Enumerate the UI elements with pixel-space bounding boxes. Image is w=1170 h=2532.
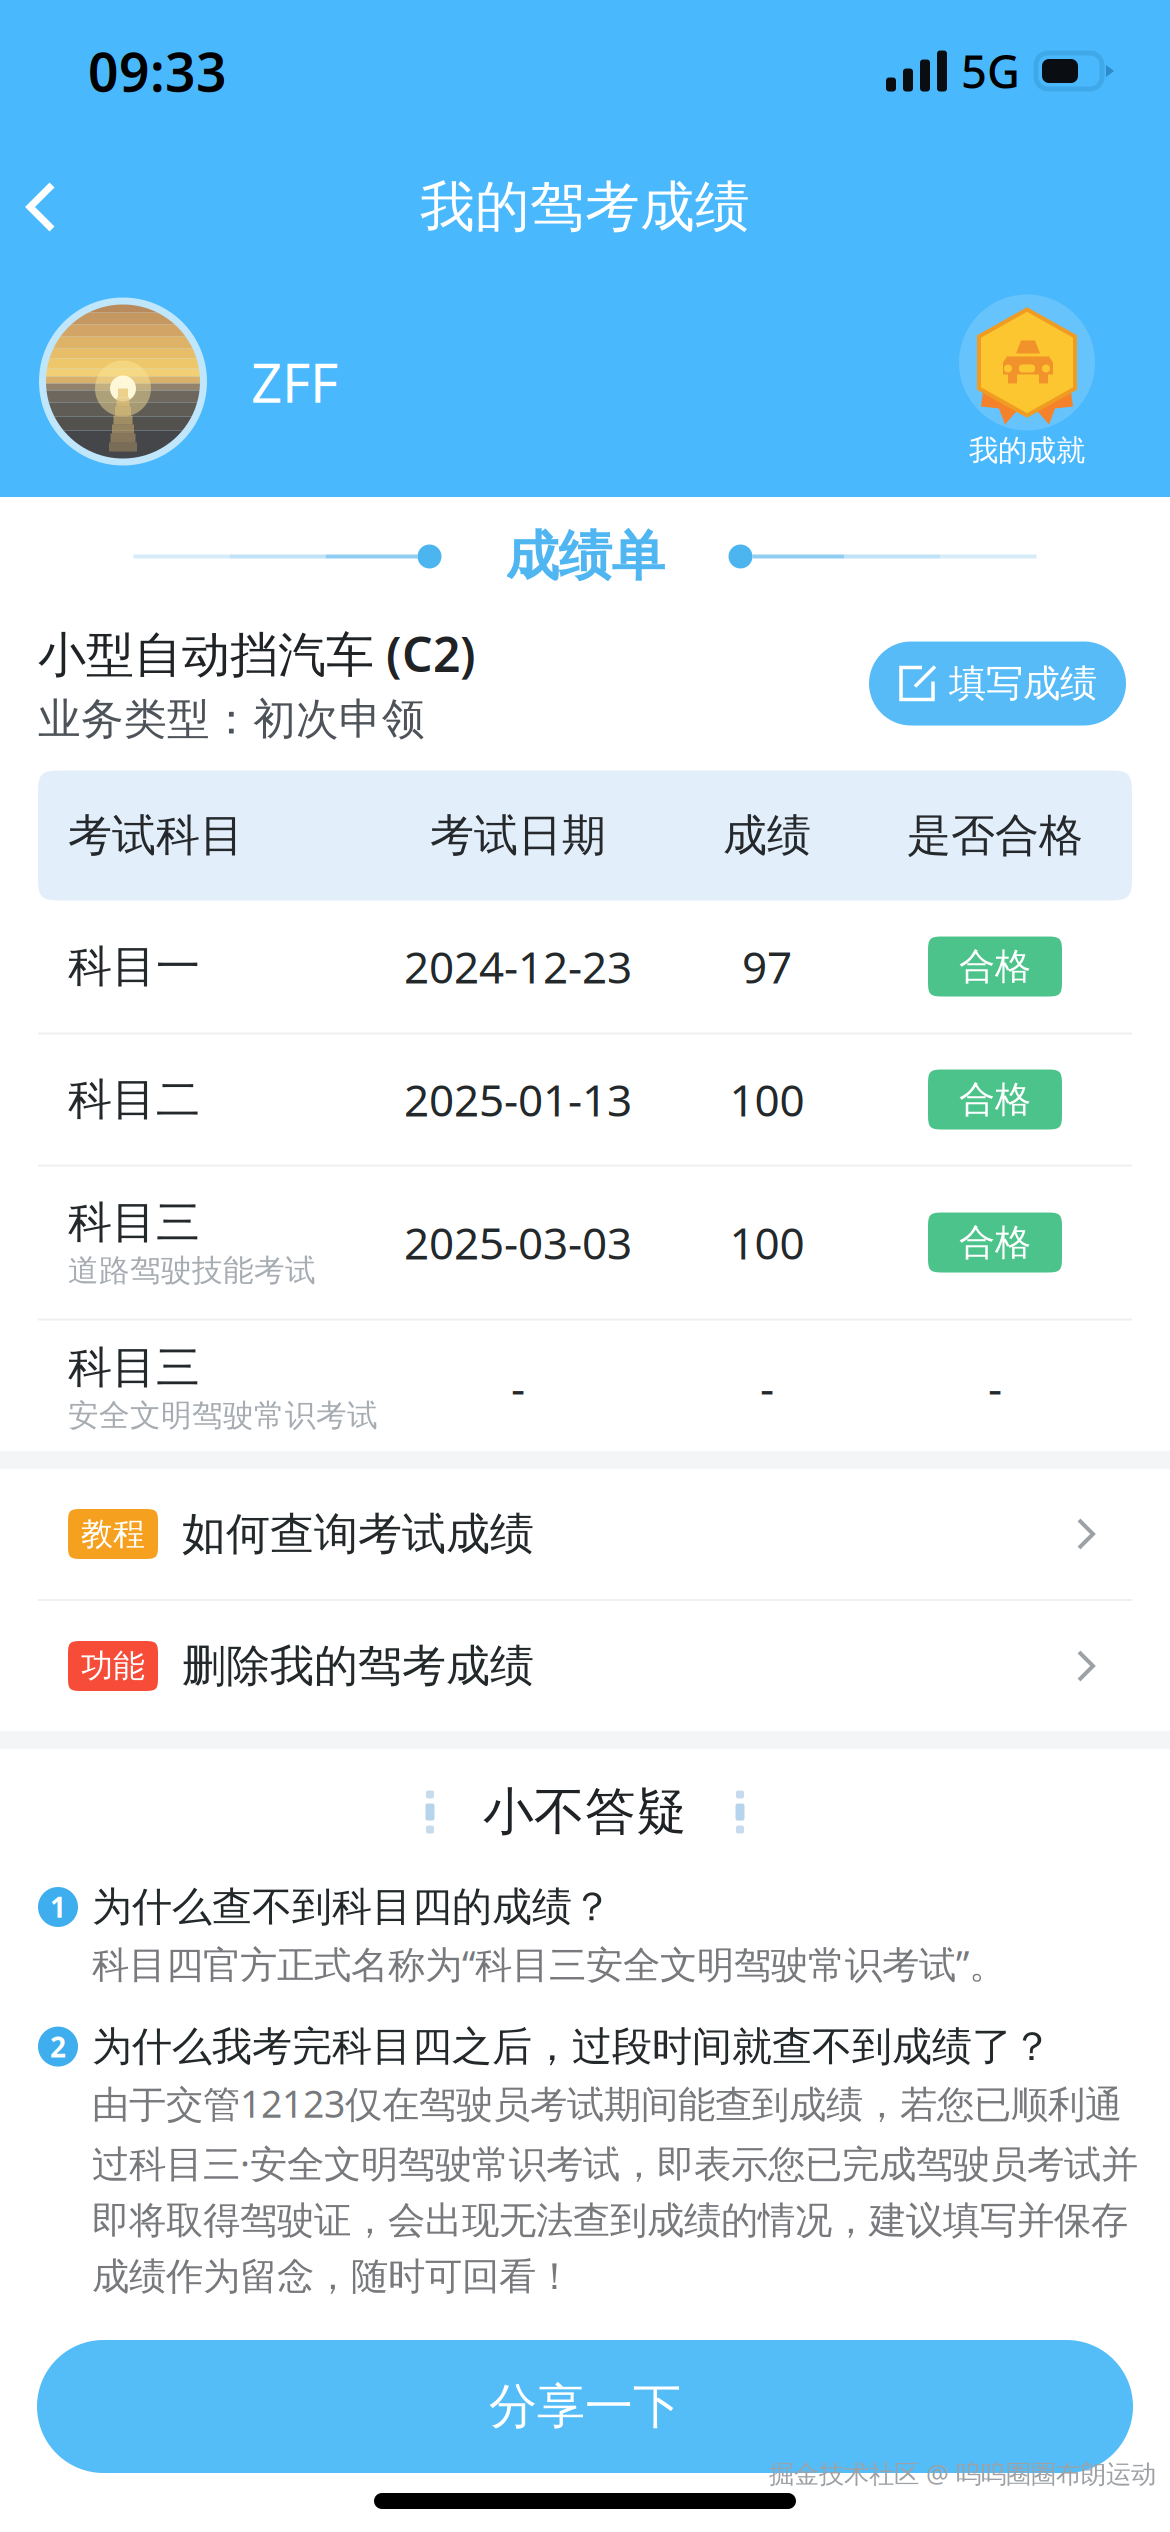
button[interactable]: 分享一下: [37, 2340, 1133, 2473]
staticText: -: [511, 1358, 525, 1417]
staticText: 科目三: [68, 1196, 200, 1250]
staticText: 成绩单: [505, 524, 664, 589]
button[interactable]: 填写成绩: [869, 641, 1126, 725]
staticText: 是否合格: [907, 808, 1083, 862]
staticText: 为什么查不到科目四的成绩？: [92, 1882, 612, 1931]
staticText: 删除我的驾考成绩: [182, 1639, 534, 1693]
staticText: ZFF: [251, 345, 338, 418]
staticText: 2025-01-13: [404, 1070, 632, 1129]
staticText: 如何查询考试成绩: [182, 1507, 534, 1561]
staticText: 教程: [81, 1514, 145, 1554]
staticText: 我的成就: [969, 432, 1085, 468]
staticText: 成绩: [723, 808, 811, 862]
staticText: -: [988, 1358, 1002, 1417]
staticText: 09:33: [88, 36, 227, 106]
staticText: 科目三: [68, 1341, 200, 1395]
staticText: 科目一: [68, 939, 200, 993]
staticText: 由于交管12123仅在驾驶员考试期间能查到成绩，若您已顺利通过科目三·安全文明驾…: [92, 2079, 1138, 2299]
button[interactable]: 教程: [0, 1469, 1170, 1599]
staticText: 100: [729, 1213, 804, 1272]
staticText: 5G: [961, 41, 1020, 101]
staticText: 功能: [81, 1646, 145, 1686]
staticText: 2025-03-03: [404, 1213, 632, 1272]
button[interactable]: 功能: [0, 1601, 1170, 1731]
staticText: 100: [729, 1070, 804, 1129]
staticText: 科目四官方正式名称为“科目三安全文明驾驶常识考试”。: [92, 1939, 1006, 1989]
staticText: 合格: [959, 1220, 1031, 1265]
staticText: 业务类型：初次申领: [38, 693, 425, 746]
staticText: 2: [50, 2028, 66, 2065]
staticText: 合格: [959, 944, 1031, 989]
staticText: 我的驾考成绩: [420, 173, 750, 240]
staticText: 道路驾驶技能考试: [68, 1252, 316, 1289]
staticText: 为什么我考完科目四之后，过段时间就查不到成绩了？: [92, 2022, 1052, 2071]
staticText: 科目二: [68, 1072, 200, 1126]
staticText: 2024-12-23: [404, 937, 632, 996]
staticText: 1: [50, 1888, 66, 1926]
staticText: -: [760, 1358, 774, 1417]
staticText: 分享一下: [489, 2377, 681, 2436]
staticText: 97: [742, 937, 792, 996]
staticText: 安全文明驾驶常识考试: [68, 1397, 378, 1434]
staticText: 小型自动挡汽车 (C2): [38, 621, 476, 685]
staticText: 合格: [959, 1077, 1031, 1122]
staticText: 掘金技术社区 @ 呜呜圈圈布朗运动: [769, 2456, 1156, 2490]
staticText: 小不答疑: [483, 1781, 687, 1843]
staticText: 考试日期: [430, 808, 606, 862]
button[interactable]: Back: [0, 159, 80, 255]
staticText: 考试科目: [68, 808, 244, 862]
button[interactable]: 我的成就: [932, 294, 1122, 468]
staticText: 填写成绩: [949, 661, 1097, 706]
